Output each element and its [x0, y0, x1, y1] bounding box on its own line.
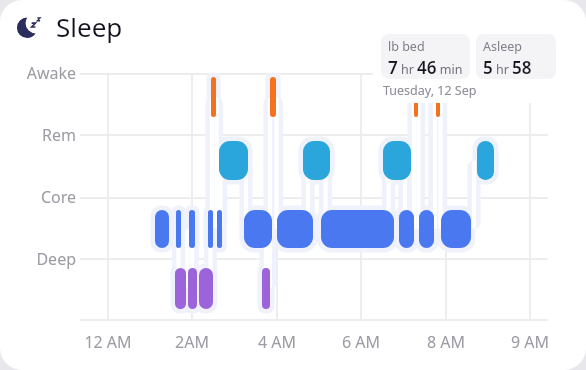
- button[interactable]: lb bed: [388, 38, 470, 79]
- staticText: Core: [0, 186, 76, 208]
- staticText: Awake: [0, 62, 76, 84]
- button[interactable]: Sleep: [15, 9, 123, 44]
- staticText: Asleep: [483, 38, 522, 55]
- button[interactable]: lb bed: [373, 27, 564, 103]
- staticText: 2AM: [152, 331, 232, 353]
- staticText: 8 AM: [406, 331, 486, 353]
- other: Sleep: [15, 11, 47, 43]
- staticText: Sleep: [56, 9, 123, 44]
- staticText: 6 AM: [321, 331, 401, 353]
- staticText: 7 hr 46 min: [388, 56, 463, 79]
- staticText: Tuesday, 12 Sep: [383, 82, 477, 99]
- staticText: lb bed: [388, 38, 425, 55]
- staticText: 5 hr 58 min: [483, 56, 556, 79]
- staticText: Rem: [0, 124, 76, 146]
- button[interactable]: Asleep: [483, 38, 556, 79]
- staticText: Deep: [0, 248, 76, 270]
- staticText: 12 AM: [68, 331, 148, 353]
- staticText: 9 AM: [490, 331, 570, 353]
- staticText: 4 AM: [237, 331, 317, 353]
